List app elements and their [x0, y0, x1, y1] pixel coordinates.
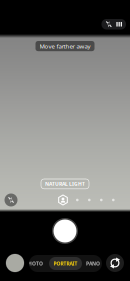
- staticText: PHOTO: [25, 260, 43, 267]
- button[interactable]: Take photo: [50, 216, 80, 246]
- staticText: NATURAL LIGHT: [45, 180, 85, 187]
- button[interactable]: Photo library: [3, 251, 27, 275]
- staticText: PORTRAIT: [53, 260, 77, 267]
- button[interactable]: PORTRAIT: [49, 257, 82, 270]
- button[interactable]: PANO: [86, 255, 102, 272]
- button[interactable]: Switch camera: [103, 251, 127, 275]
- staticText: PANO: [86, 260, 100, 267]
- staticText: Move farther away: [39, 42, 90, 50]
- button[interactable]: PHOTO: [27, 255, 43, 272]
- button[interactable]: Camera controls: [101, 19, 126, 29]
- button[interactable]: Flash: [3, 192, 19, 208]
